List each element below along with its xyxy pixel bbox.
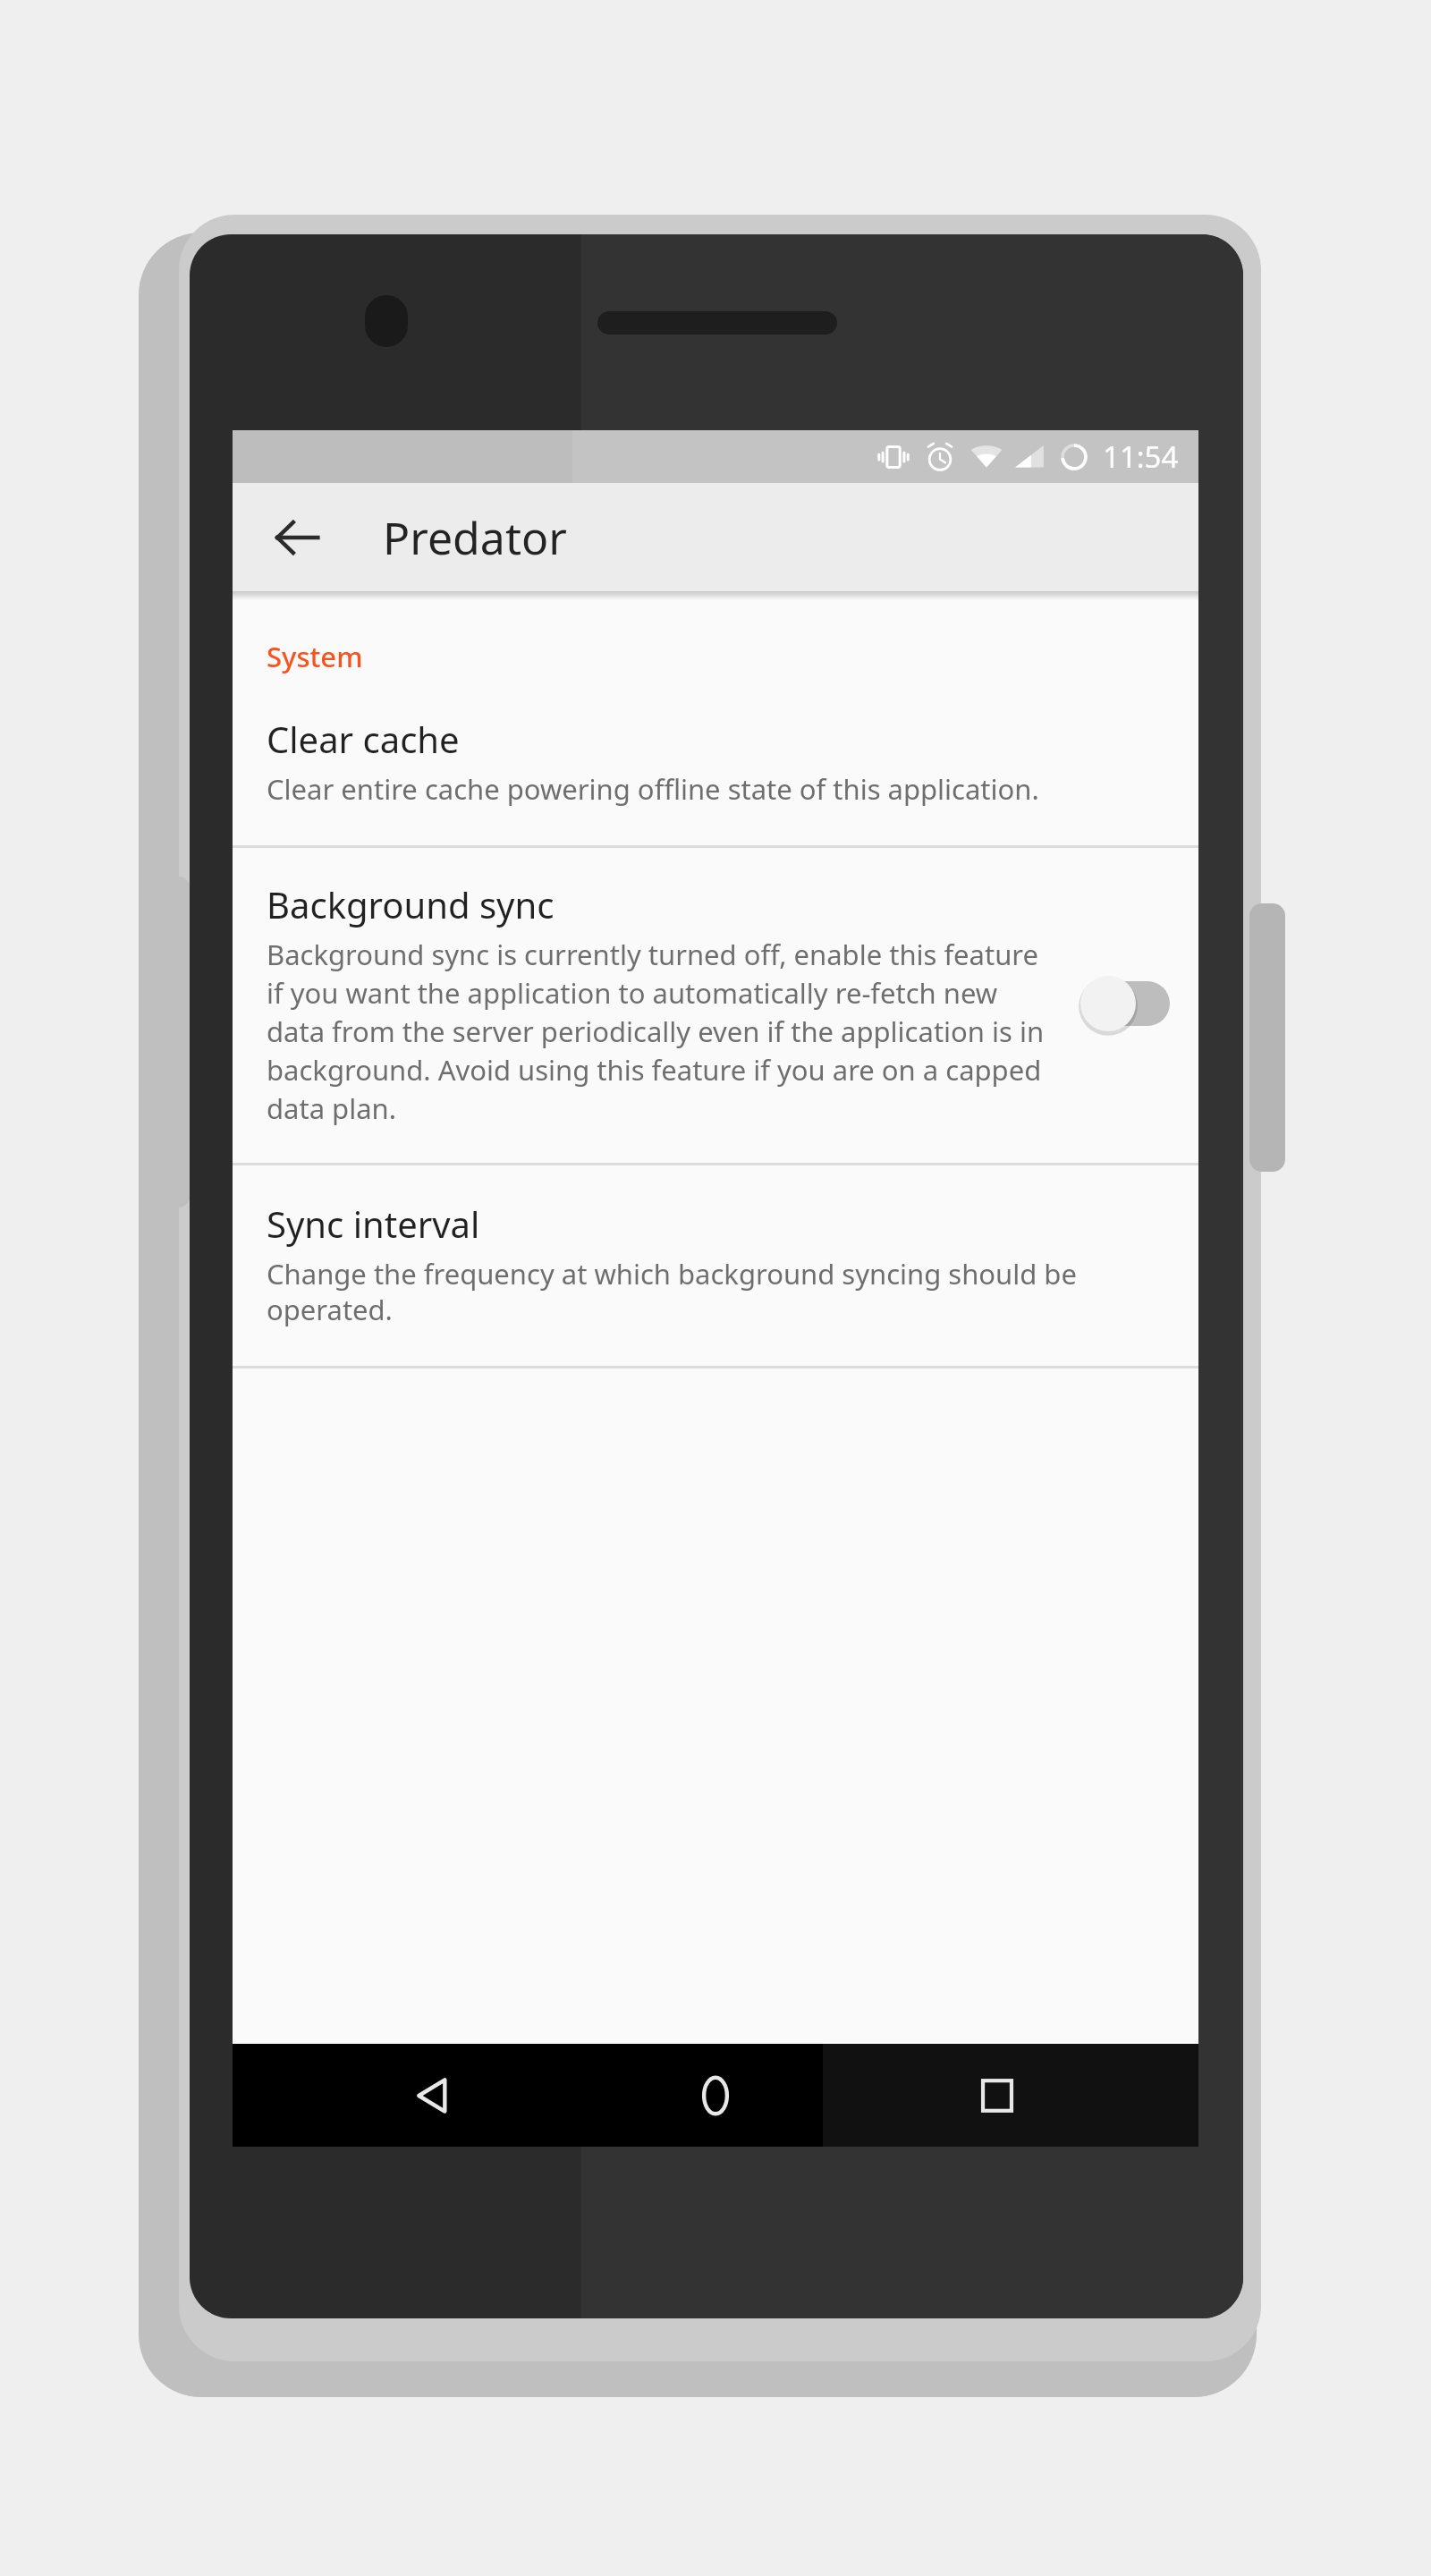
staticText: Sync interval xyxy=(267,1199,480,1248)
staticText: Predator xyxy=(383,507,567,568)
button[interactable]: Back xyxy=(353,2044,514,2147)
button[interactable]: Recent apps xyxy=(917,2044,1078,2147)
staticText: Background sync xyxy=(267,880,555,928)
button[interactable]: Sync interval xyxy=(233,1165,1198,1366)
staticText: Clear entire cache powering offline stat… xyxy=(267,770,1039,808)
button[interactable]: Home xyxy=(635,2044,796,2147)
button[interactable]: Clear cache xyxy=(233,681,1198,845)
button[interactable]: Background sync toggle xyxy=(1077,970,1173,1038)
staticText: System xyxy=(267,638,363,675)
button[interactable]: Back xyxy=(254,495,340,580)
staticText: Change the frequency at which background… xyxy=(267,1255,1164,1328)
staticText: Clear cache xyxy=(267,715,460,763)
staticText: 11:54 xyxy=(1103,436,1179,477)
button[interactable]: Background sync xyxy=(233,848,1198,1163)
staticText: Background sync is currently turned off,… xyxy=(267,936,1059,1127)
